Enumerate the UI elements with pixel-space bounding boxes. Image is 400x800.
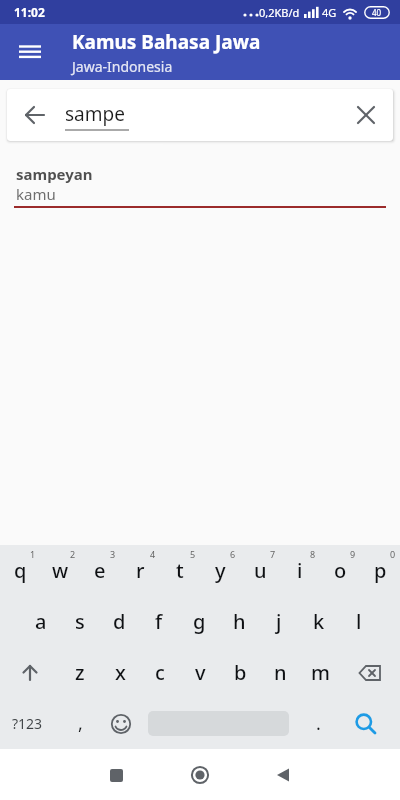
button[interactable]: p (360, 545, 400, 596)
button[interactable]: o (320, 545, 360, 596)
staticText: sampeyan (16, 164, 93, 184)
staticText: Jawa-Indonesia (72, 57, 173, 76)
staticText: 0,2KB/d (259, 5, 300, 20)
staticText: 6 (230, 548, 236, 560)
staticText: kamu (16, 184, 56, 204)
button[interactable]: u (240, 545, 280, 596)
staticText: , (78, 711, 83, 736)
button[interactable]: c (140, 647, 180, 698)
staticText: d (113, 608, 126, 635)
button[interactable] (0, 647, 60, 698)
staticText: 9 (350, 548, 356, 560)
button[interactable]: ?123 (4, 698, 50, 749)
staticText: 7 (270, 548, 276, 560)
staticText: v (195, 659, 206, 686)
staticText: k (313, 608, 325, 635)
button[interactable]: l (339, 596, 379, 647)
staticText: ?123 (12, 714, 43, 733)
staticText: 40 (372, 7, 382, 18)
staticText: t (176, 557, 184, 584)
staticText: h (233, 608, 246, 635)
staticText: 4G (322, 5, 337, 20)
staticText: 5 (190, 548, 196, 560)
staticText: r (136, 557, 145, 584)
button[interactable]: z (60, 647, 100, 698)
staticText: w (52, 557, 69, 584)
button[interactable] (269, 761, 297, 789)
button[interactable]: b (220, 647, 260, 698)
staticText: g (193, 608, 206, 635)
button[interactable]: r (120, 545, 160, 596)
staticText: l (356, 608, 362, 635)
staticText: e (94, 557, 106, 584)
staticText: p (374, 557, 387, 584)
button[interactable]: x (100, 647, 140, 698)
button[interactable] (19, 99, 51, 131)
staticText: . (316, 711, 321, 736)
button[interactable]: m (300, 647, 340, 698)
button[interactable]: sampeyan (0, 158, 400, 204)
button[interactable]: . (300, 698, 336, 749)
button[interactable]: d (99, 596, 139, 647)
staticText: 3 (110, 548, 116, 560)
staticText: sampe (65, 101, 125, 127)
button[interactable]: h (219, 596, 259, 647)
button[interactable]: g (179, 596, 219, 647)
staticText: 1 (30, 548, 36, 560)
button[interactable]: a (21, 596, 60, 647)
staticText: j (276, 608, 282, 635)
button[interactable] (350, 708, 382, 740)
staticText: f (155, 608, 163, 635)
button[interactable]: , (58, 698, 102, 749)
staticText: b (234, 659, 247, 686)
staticText: n (274, 659, 287, 686)
staticText: 8 (310, 548, 316, 560)
staticText: 4 (150, 548, 156, 560)
button[interactable] (102, 761, 130, 789)
staticText: q (14, 557, 27, 584)
button[interactable]: n (260, 647, 300, 698)
button[interactable]: k (299, 596, 339, 647)
button[interactable]: j (259, 596, 299, 647)
staticText: a (35, 608, 47, 635)
button[interactable] (350, 99, 382, 131)
staticText: z (75, 659, 85, 686)
button[interactable]: i (280, 545, 320, 596)
staticText: u (254, 557, 267, 584)
button[interactable]: w (40, 545, 80, 596)
staticText: o (334, 557, 347, 584)
button[interactable] (186, 761, 214, 789)
button[interactable] (105, 708, 137, 740)
staticText: s (75, 608, 85, 635)
staticText: c (155, 659, 165, 686)
staticText: Kamus Bahasa Jawa (72, 29, 261, 55)
button[interactable]: s (60, 596, 99, 647)
staticText: 2 (70, 548, 76, 560)
staticText: 0 (390, 548, 396, 560)
staticText: y (215, 557, 226, 584)
staticText: i (297, 557, 303, 584)
button[interactable]: e (80, 545, 120, 596)
button[interactable]: t (160, 545, 200, 596)
staticText: 11:02 (14, 4, 45, 20)
button[interactable] (14, 40, 46, 64)
button[interactable]: v (180, 647, 220, 698)
staticText: x (115, 659, 126, 686)
staticText: m (311, 659, 330, 686)
button[interactable]: y (200, 545, 240, 596)
button[interactable] (340, 647, 400, 698)
button[interactable]: f (139, 596, 179, 647)
button[interactable]: q (0, 545, 40, 596)
